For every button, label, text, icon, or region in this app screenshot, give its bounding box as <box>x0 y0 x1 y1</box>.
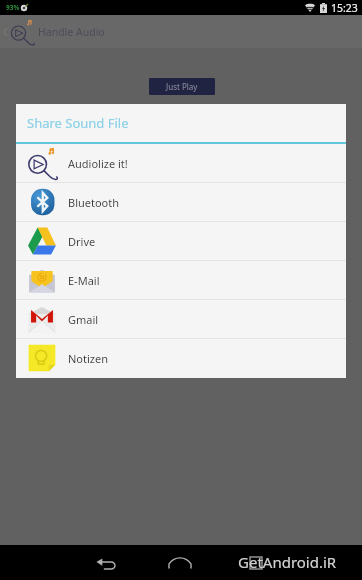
staticText: Bluetooth <box>68 195 120 210</box>
staticText: Drive <box>68 234 96 249</box>
button[interactable]: Back <box>85 545 127 580</box>
staticText: 15:23 <box>331 1 358 15</box>
button[interactable]: Drive <box>16 222 346 261</box>
staticText: Share Sound File <box>27 114 129 132</box>
staticText: 93% <box>6 3 20 12</box>
staticText: Handle Audio <box>38 25 105 39</box>
button[interactable]: Audiolize it! <box>16 144 346 183</box>
staticText: Notizen <box>68 351 108 366</box>
button[interactable]: Recent apps <box>235 545 277 580</box>
button[interactable]: Just Play <box>149 78 215 95</box>
button[interactable]: Bluetooth <box>16 183 346 222</box>
button[interactable]: Gmail <box>16 300 346 339</box>
staticText: Gmail <box>68 312 99 327</box>
button[interactable]: Home <box>159 545 201 580</box>
staticText: Just Play <box>166 81 198 92</box>
staticText: Audiolize it! <box>68 156 128 171</box>
staticText: GetAndroid.iR <box>238 552 337 572</box>
button[interactable]: Notizen <box>16 339 346 378</box>
button[interactable]: E-Mail <box>16 261 346 300</box>
staticText: E-Mail <box>68 273 100 288</box>
button[interactable]: Back <box>0 15 10 48</box>
